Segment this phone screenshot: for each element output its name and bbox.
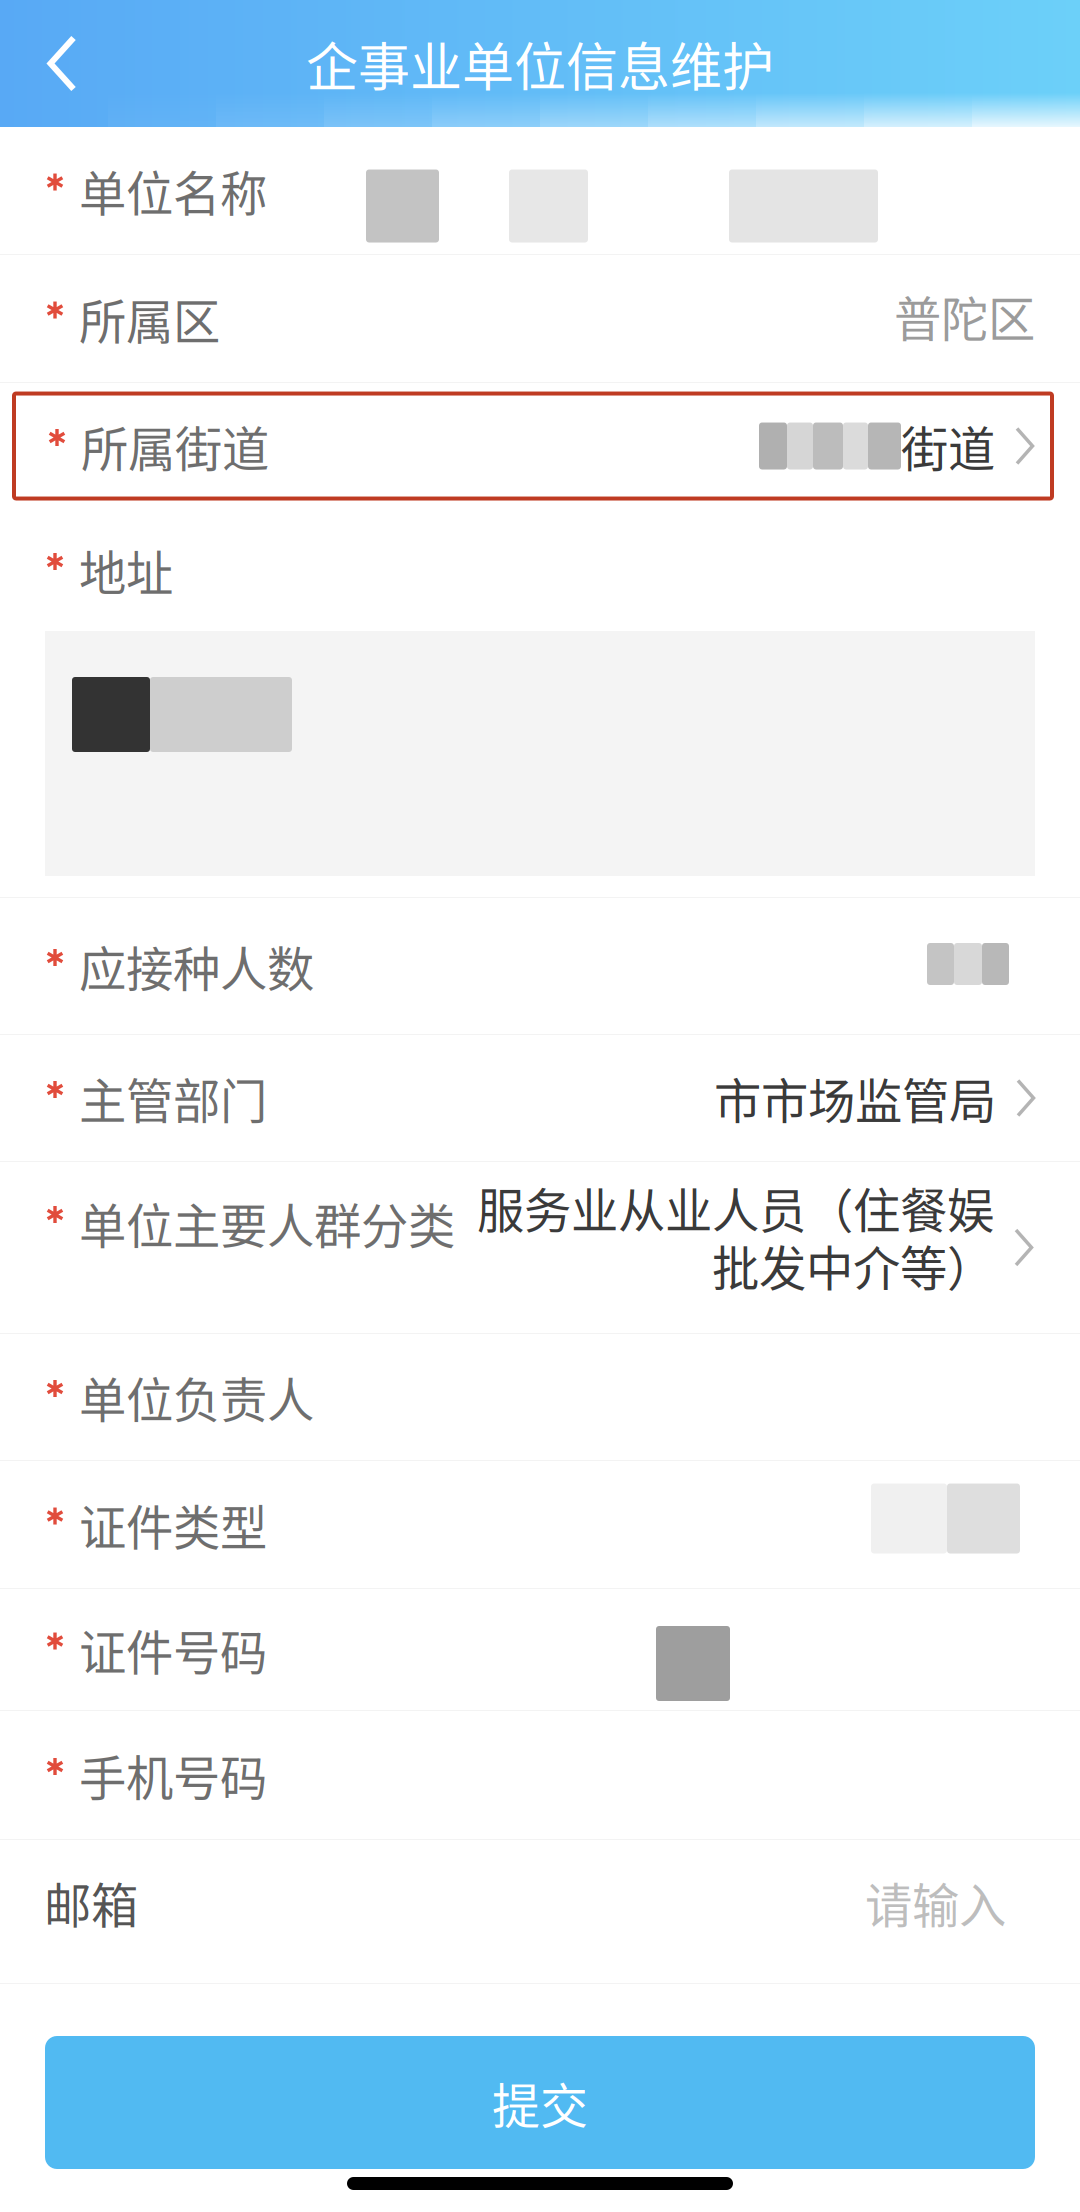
staticText: 请输入 [865,1868,1006,1937]
staticText: 证件号码 [79,1615,267,1684]
button[interactable]: 证件类型 [0,1461,1080,1588]
button[interactable]: 手机号码 [0,1711,1080,1839]
staticText: 手机号码 [79,1741,267,1809]
staticText: 普陀区 [894,282,1035,350]
staticText: 批发中介等） [712,1231,994,1299]
staticText: 提交 [492,2068,588,2137]
staticText: 服务业从业人员（住餐娱 [477,1173,994,1242]
staticText: 地址 [79,536,173,604]
button[interactable]: 单位名称 [0,127,1080,254]
button[interactable]: 单位负责人 [0,1334,1080,1460]
button[interactable]: 邮箱 [0,1840,1080,1983]
button[interactable]: 应接种人数 [0,898,1080,1034]
button[interactable]: 所属街道 [0,383,1080,509]
staticText: 企事业单位信息维护 [306,26,774,101]
staticText: 证件类型 [79,1490,267,1559]
staticText: 单位名称 [79,156,267,225]
button[interactable]: 主管部门 [0,1035,1080,1161]
button[interactable]: 提交 [0,2036,1080,2169]
button[interactable]: 所属区 [0,255,1080,382]
button[interactable]: Back [0,0,124,127]
staticText: 应接种人数 [79,932,314,1000]
staticText: 所属区 [79,284,220,353]
staticText: 单位负责人 [79,1363,314,1431]
button[interactable]: 地址 [0,631,1080,876]
staticText: 街道 [901,412,995,480]
staticText: 市市场监管局 [714,1064,996,1132]
staticText: 主管部门 [79,1064,267,1132]
staticText: 单位主要人群分类 [79,1189,455,1257]
button[interactable]: 证件号码 [0,1589,1080,1710]
button[interactable]: 单位主要人群分类 [0,1162,1080,1333]
staticText: 所属街道 [81,412,269,480]
staticText: 邮箱 [44,1868,138,1937]
